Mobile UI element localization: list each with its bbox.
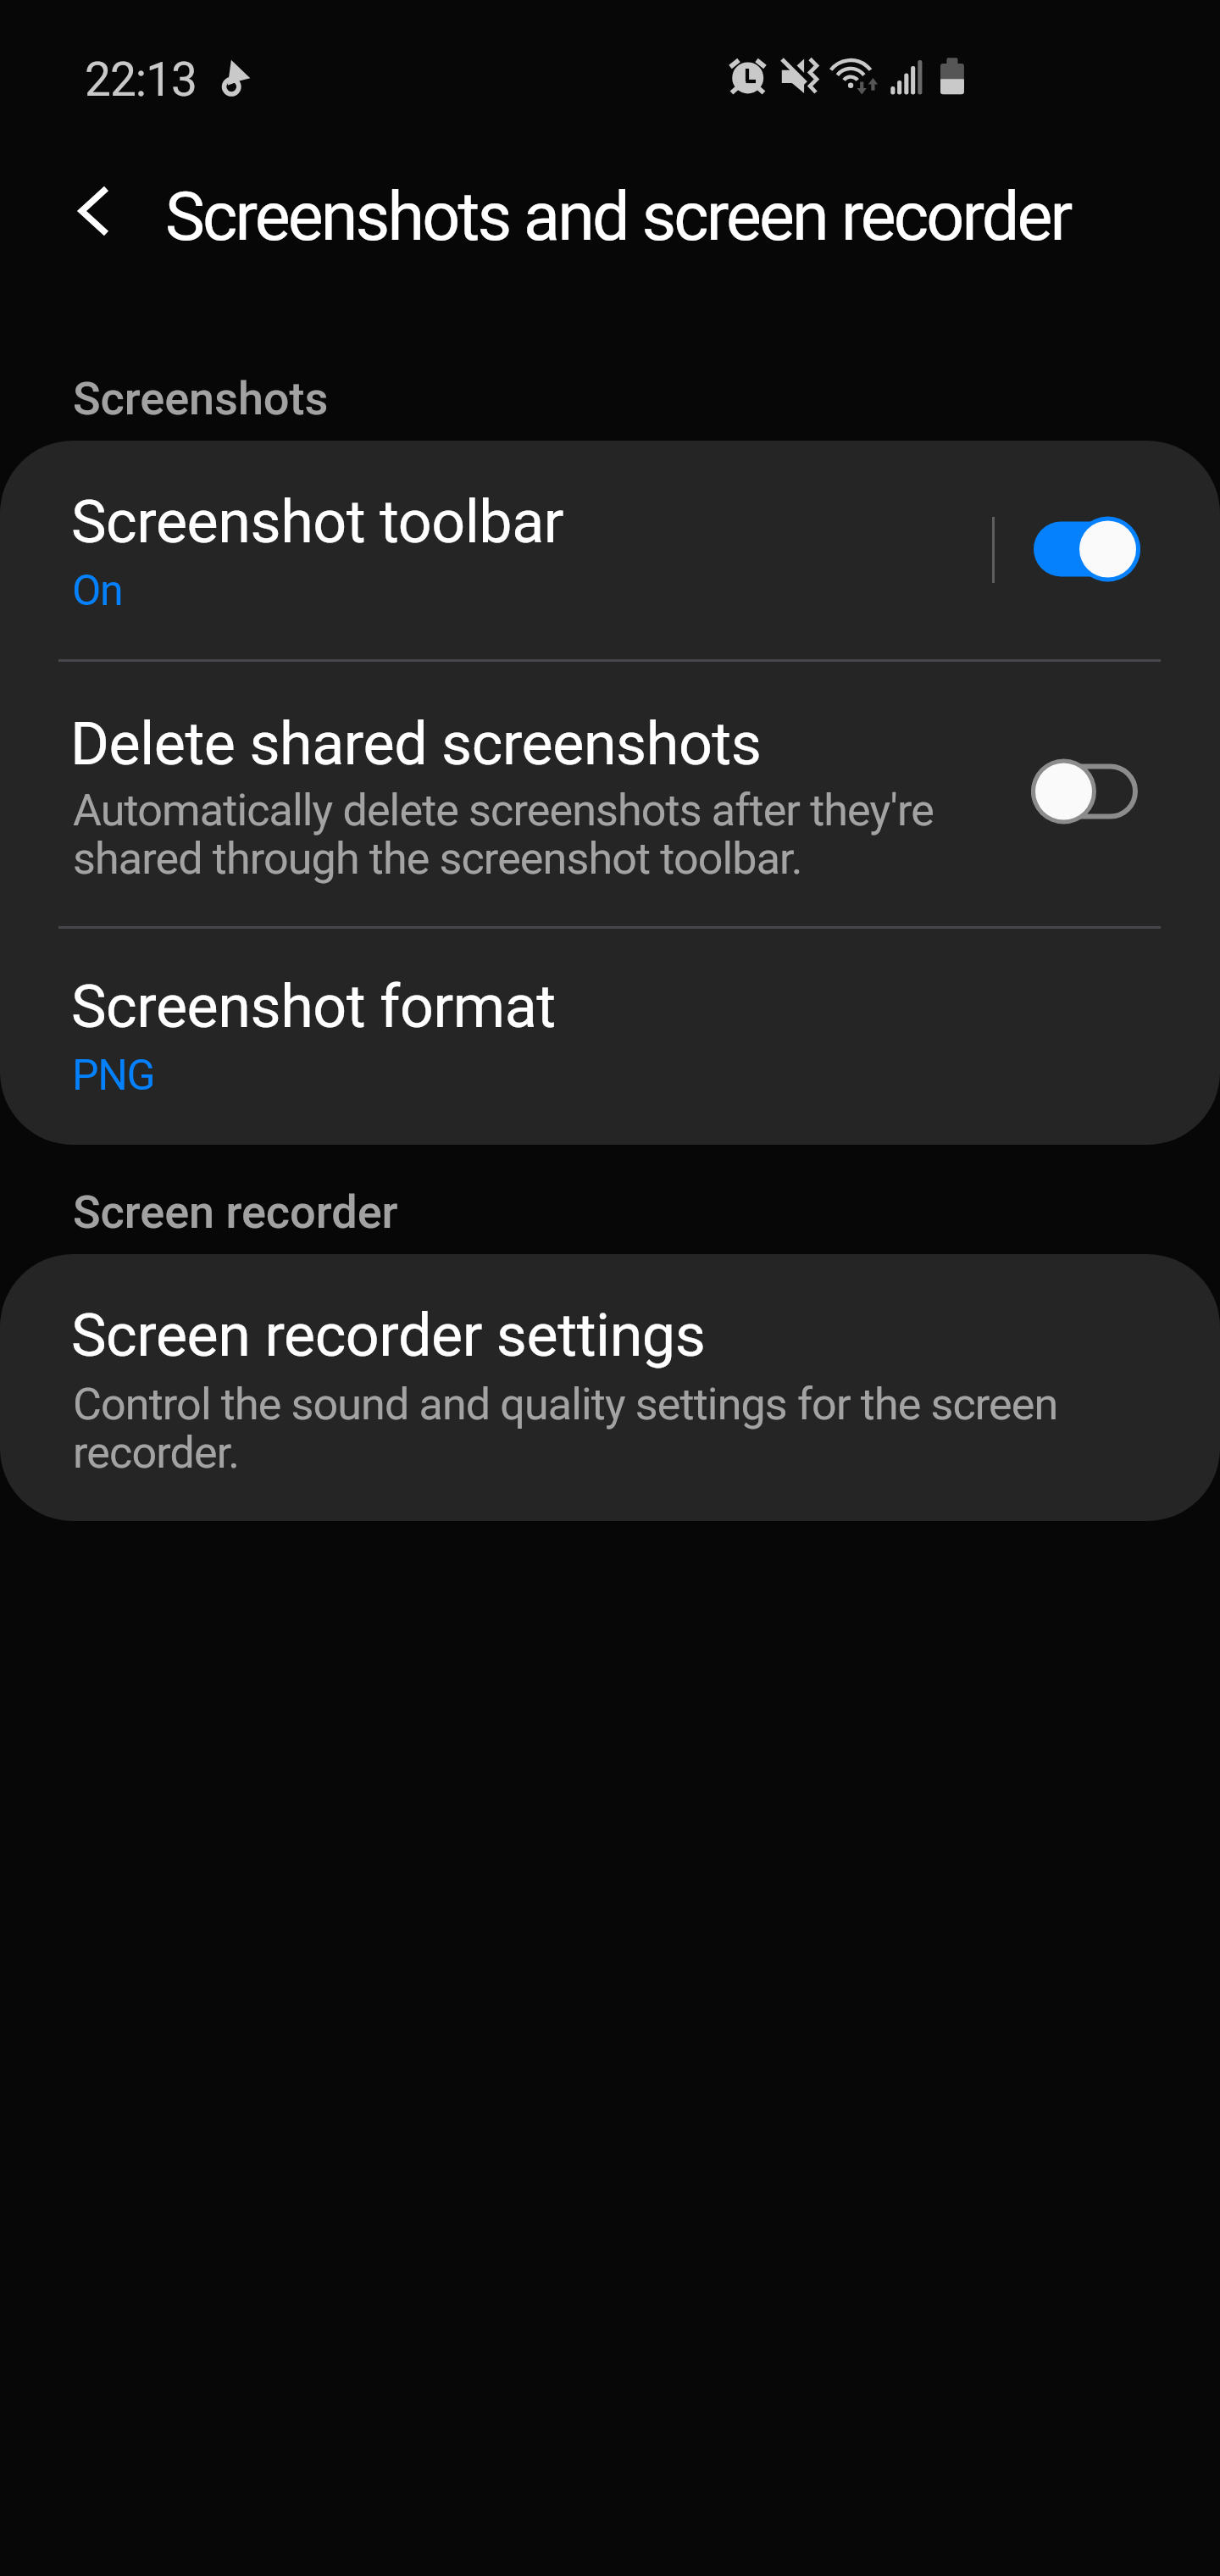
staticText: Screenshot format — [71, 974, 556, 1041]
staticText: Screenshots and screen recorder — [165, 180, 1071, 255]
button[interactable]: Screenshot format — [0, 929, 1220, 1145]
staticText: 22:13 — [85, 57, 197, 106]
staticText: Screen recorder — [73, 1189, 398, 1238]
staticText: Automatically delete screenshots after t… — [73, 787, 971, 884]
staticText: Screen recorder settings — [71, 1303, 706, 1369]
button[interactable]: Delete shared screenshots — [0, 662, 1220, 926]
staticText: On — [72, 569, 123, 614]
button[interactable]: Delete shared screenshots, off — [1013, 741, 1156, 842]
button[interactable]: Screenshot toolbar, on — [1016, 498, 1158, 600]
button[interactable]: Screen recorder settings — [0, 1254, 1220, 1521]
staticText: Delete shared screenshots — [70, 712, 762, 778]
button[interactable]: Screenshot toolbar — [0, 441, 1220, 659]
staticText: PNG — [72, 1053, 155, 1099]
staticText: Screenshot toolbar — [71, 490, 564, 556]
button[interactable]: Navigate up — [39, 158, 146, 264]
staticText: Control the sound and quality settings f… — [73, 1381, 1115, 1478]
staticText: Screenshots — [73, 375, 329, 425]
